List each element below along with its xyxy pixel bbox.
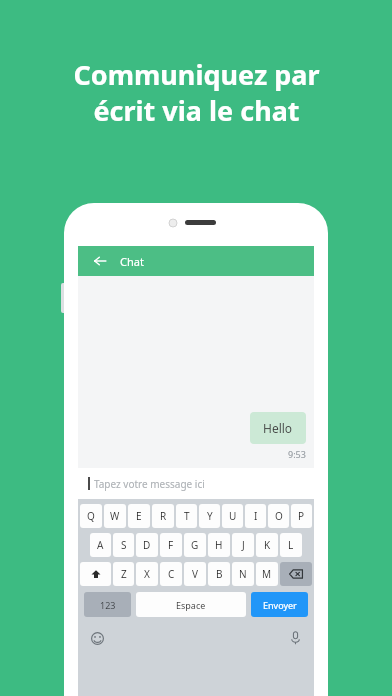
button[interactable]: V <box>184 562 206 586</box>
button[interactable]: S <box>113 533 134 557</box>
button[interactable]: Voice input <box>286 629 304 647</box>
staticText: Tapez votre message ici <box>94 477 205 491</box>
button[interactable]: D <box>136 533 158 557</box>
staticText: 123 <box>100 599 116 611</box>
staticText: 9:53 <box>288 448 306 460</box>
button[interactable]: P <box>291 504 312 528</box>
button[interactable]: L <box>280 533 302 557</box>
button[interactable]: G <box>184 533 206 557</box>
staticText: P <box>298 509 305 523</box>
staticText: L <box>288 538 294 552</box>
button[interactable]: Hello <box>250 412 306 444</box>
staticText: K <box>264 538 271 552</box>
staticText: S <box>121 538 127 552</box>
staticText: V <box>192 567 198 581</box>
button[interactable]: Espace <box>136 592 246 617</box>
staticText: Q <box>87 509 95 523</box>
button[interactable]: H <box>208 533 230 557</box>
staticText: Espace <box>176 599 206 611</box>
staticText: G <box>191 538 199 552</box>
staticText: A <box>97 538 104 552</box>
staticText: M <box>262 567 272 581</box>
button[interactable]: F <box>160 533 182 557</box>
button[interactable]: Shift <box>80 562 111 586</box>
button[interactable]: Backspace <box>280 562 312 586</box>
button[interactable]: M <box>256 562 278 586</box>
staticText: T <box>184 509 190 523</box>
staticText: E <box>136 509 142 523</box>
staticText: X <box>144 567 150 581</box>
staticText: B <box>216 567 223 581</box>
button[interactable]: K <box>256 533 278 557</box>
staticText: W <box>110 509 120 523</box>
button[interactable]: C <box>160 562 182 586</box>
button[interactable]: U <box>222 504 243 528</box>
button[interactable]: J <box>232 533 254 557</box>
staticText: D <box>143 538 151 552</box>
staticText: F <box>168 538 174 552</box>
staticText: C <box>168 567 175 581</box>
staticText: Chat <box>120 254 144 269</box>
staticText: N <box>239 567 247 581</box>
button[interactable]: Q <box>80 504 102 528</box>
staticText: U <box>229 509 237 523</box>
staticText: H <box>215 538 223 552</box>
staticText: Envoyer <box>263 599 297 611</box>
staticText: Y <box>207 509 213 523</box>
button[interactable]: N <box>232 562 254 586</box>
button[interactable]: 123 <box>84 592 131 617</box>
button[interactable]: W <box>104 504 126 528</box>
button[interactable]: X <box>136 562 158 586</box>
staticText: Hello <box>263 420 293 436</box>
button[interactable]: Emoji <box>88 629 106 647</box>
button[interactable]: R <box>152 504 174 528</box>
staticText: J <box>242 538 245 552</box>
staticText: I <box>254 509 258 523</box>
button[interactable]: Y <box>199 504 220 528</box>
staticText: Communiquez par écrit via le chat <box>73 56 320 129</box>
button[interactable]: Z <box>113 562 134 586</box>
staticText: O <box>275 509 283 523</box>
button[interactable]: A <box>90 533 111 557</box>
button[interactable]: Tapez votre message ici <box>78 468 314 499</box>
button[interactable]: Back <box>90 251 110 271</box>
button[interactable]: O <box>268 504 289 528</box>
staticText: R <box>160 509 167 523</box>
button[interactable]: Envoyer <box>251 592 308 617</box>
button[interactable]: B <box>208 562 230 586</box>
button[interactable]: T <box>176 504 197 528</box>
button[interactable]: E <box>128 504 150 528</box>
staticText: Z <box>121 567 127 581</box>
button[interactable]: I <box>245 504 266 528</box>
